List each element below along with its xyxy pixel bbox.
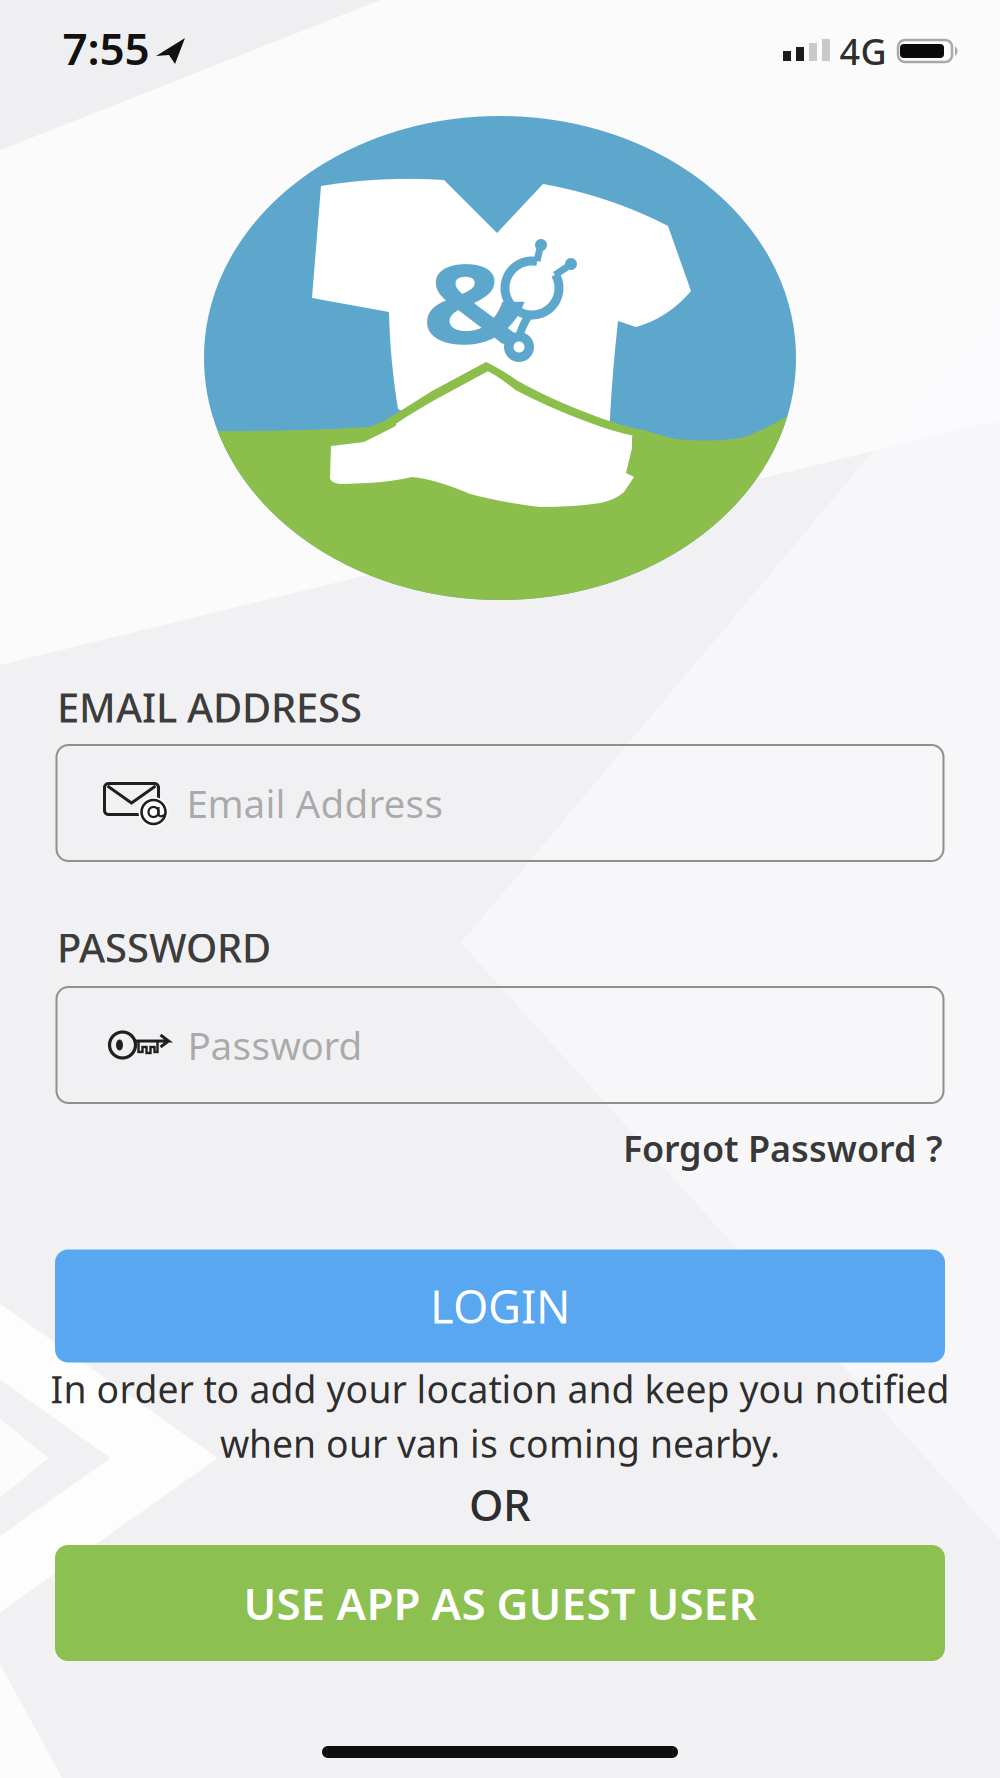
staticText: 7:55 <box>62 19 149 77</box>
staticText: PASSWORD <box>57 920 271 973</box>
button[interactable]: USE APP AS GUEST USER <box>55 1545 945 1661</box>
button[interactable]: Email Address <box>56 745 943 861</box>
staticText: USE APP AS GUEST USER <box>243 1574 756 1632</box>
staticText: & <box>431 223 519 379</box>
button[interactable]: Forgot Password ? <box>57 1123 943 1173</box>
staticText: Password <box>187 1019 362 1071</box>
staticText: EMAIL ADDRESS <box>57 680 362 733</box>
staticText: when our van is coming nearby. <box>220 1418 780 1468</box>
staticText: 4G <box>839 27 886 75</box>
staticText: Forgot Password ? <box>623 1124 943 1172</box>
button[interactable]: Password <box>56 987 943 1103</box>
staticText: LOGIN <box>430 1276 570 1336</box>
staticText: OR <box>469 1475 531 1533</box>
button[interactable]: LOGIN <box>55 1249 945 1362</box>
staticText: Email Address <box>186 777 443 829</box>
staticText: In order to add your location and keep y… <box>50 1364 949 1413</box>
